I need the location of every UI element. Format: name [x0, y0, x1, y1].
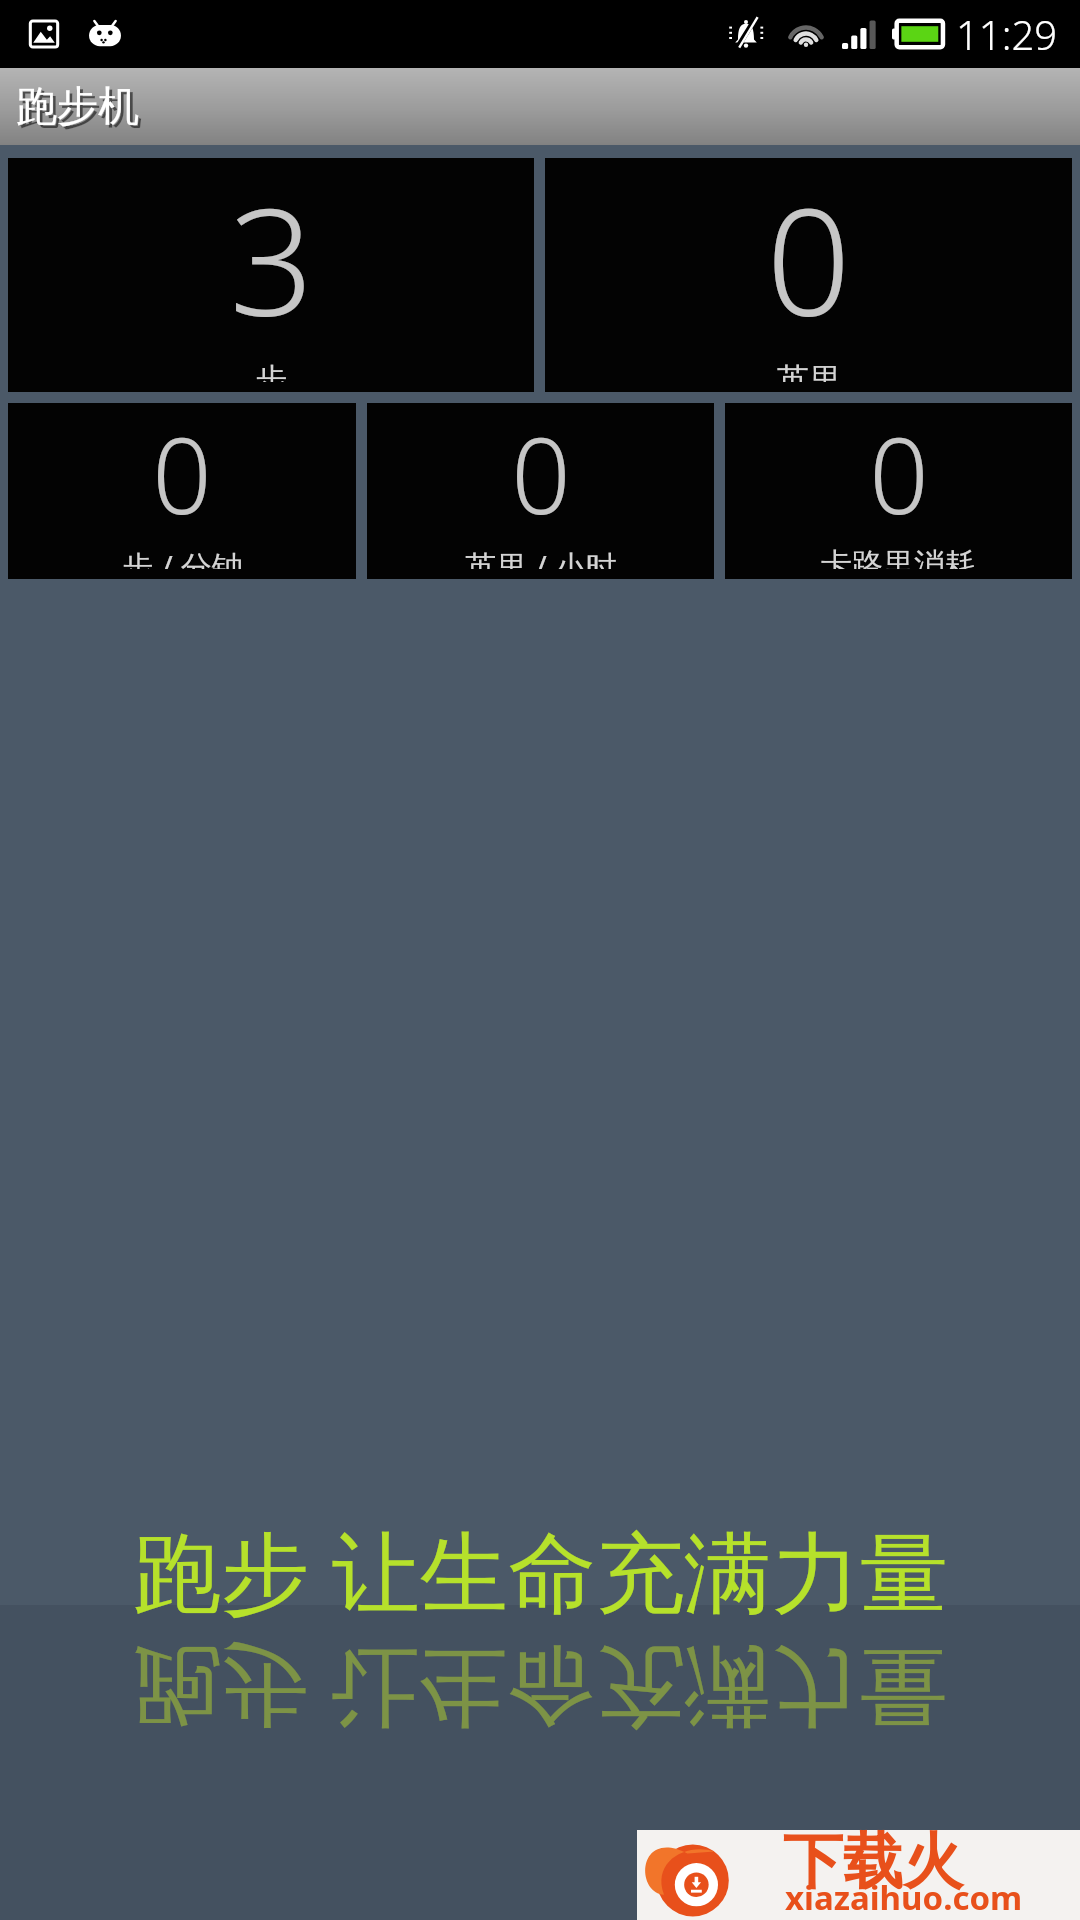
staticText: 11:29	[956, 7, 1058, 61]
staticText: 跑步机	[19, 84, 142, 136]
staticText: 0	[766, 158, 851, 360]
button[interactable]: 0	[8, 403, 356, 579]
staticText: 跑步机	[16, 81, 139, 133]
staticText: xiazaihuo.com	[785, 1875, 1023, 1920]
staticText: 0	[152, 403, 212, 545]
button[interactable]: 0	[367, 403, 714, 579]
staticText: 步 / 分钟	[122, 545, 243, 569]
staticText: 卡路里消耗	[821, 545, 976, 569]
staticText: 步	[255, 360, 287, 382]
button[interactable]: 3	[8, 158, 534, 392]
button[interactable]: 0	[725, 403, 1072, 579]
staticText: 跑步 让生命充满力量	[133, 1510, 948, 1630]
staticText: 3	[229, 158, 314, 360]
button[interactable]: xiazaihuo.com	[637, 1830, 1080, 1920]
staticText: 英里 / 小时	[465, 545, 617, 569]
staticText: 0	[869, 403, 929, 545]
staticText: 下载火	[783, 1824, 963, 1900]
staticText: 英里	[777, 360, 841, 382]
button[interactable]: 0	[545, 158, 1072, 392]
staticText: 跑步 让生命充满力量	[133, 1630, 948, 1750]
staticText: 0	[511, 403, 571, 545]
